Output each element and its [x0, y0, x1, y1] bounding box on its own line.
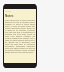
- button[interactable]: Home: [4, 63, 36, 68]
- staticText: Lorem ipsum dolor sit amet consectetur a…: [5, 19, 35, 53]
- button[interactable]: Back: [4, 4, 36, 9]
- staticText: MAR 04: [5, 10, 12, 12]
- staticText: Notes: [5, 14, 14, 18]
- button[interactable]: MAR 04: [4, 9, 36, 63]
